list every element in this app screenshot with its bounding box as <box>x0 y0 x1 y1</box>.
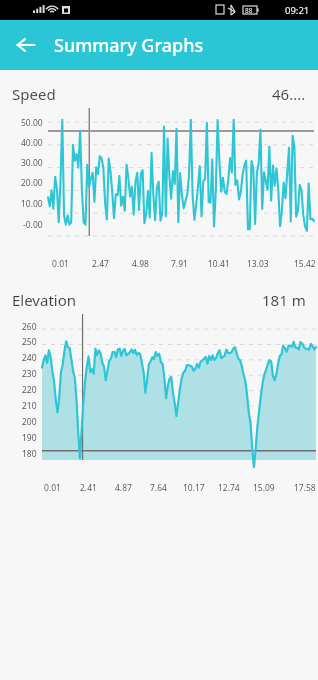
staticText: 10.41 <box>208 258 230 270</box>
button[interactable]: Back <box>8 27 44 63</box>
staticText: 10.00 <box>21 198 43 210</box>
staticText: 180 <box>22 448 37 460</box>
staticText: 4.87 <box>115 482 132 494</box>
staticText: 0.01 <box>52 258 69 270</box>
staticText: Elevation <box>12 290 262 310</box>
staticText: 88 <box>245 6 253 15</box>
staticText: 200 <box>22 416 37 428</box>
staticText: 210 <box>22 400 37 412</box>
staticText: 7.91 <box>171 258 188 270</box>
staticText: 13.03 <box>247 258 269 270</box>
staticText: 17.58 <box>294 482 316 494</box>
staticText: 0.01 <box>44 482 61 494</box>
staticText: 250 <box>22 336 37 348</box>
staticText: 15.09 <box>253 482 275 494</box>
staticText: 15.42 <box>294 258 316 270</box>
staticText: 10.17 <box>183 482 205 494</box>
staticText: 4.98 <box>132 258 149 270</box>
staticText: 20.00 <box>21 177 43 189</box>
staticText: 12.74 <box>218 482 240 494</box>
staticText: 30.00 <box>21 157 43 169</box>
staticText: 181 m <box>262 290 306 310</box>
staticText: 220 <box>22 384 37 396</box>
staticText: 260 <box>22 321 37 333</box>
staticText: 2.47 <box>92 258 109 270</box>
staticText: 7.64 <box>150 482 167 494</box>
staticText: 50.00 <box>21 117 43 129</box>
staticText: 2.41 <box>80 482 97 494</box>
staticText: 240 <box>22 352 37 364</box>
staticText: Speed <box>12 84 272 104</box>
staticText: 46.... <box>272 84 306 104</box>
staticText: 230 <box>22 368 37 380</box>
staticText: 09:21 <box>285 4 310 17</box>
staticText: 190 <box>22 432 37 444</box>
staticText: 40.00 <box>21 137 43 149</box>
staticText: -0.00 <box>23 219 43 231</box>
staticText: Summary Graphs <box>54 33 204 58</box>
